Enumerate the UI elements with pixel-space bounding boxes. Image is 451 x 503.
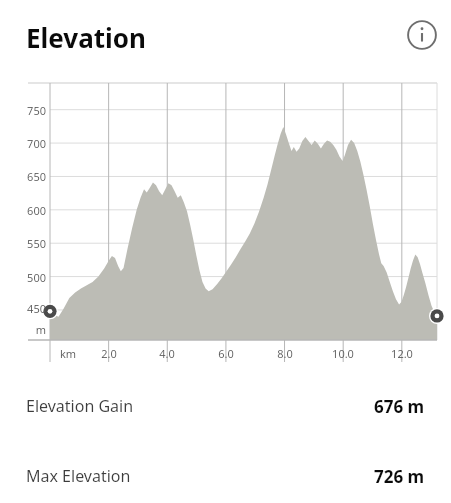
- staticText: 450: [20, 301, 46, 316]
- staticText: Max Elevation: [26, 465, 131, 487]
- staticText: 700: [20, 136, 46, 151]
- staticText: 4.0: [147, 346, 187, 361]
- staticText: 500: [20, 270, 46, 285]
- staticText: 6.0: [206, 346, 246, 361]
- staticText: Elevation: [26, 20, 146, 55]
- staticText: m: [20, 322, 46, 337]
- staticText: 650: [20, 169, 46, 184]
- staticText: 726 m: [374, 465, 425, 488]
- staticText: km: [48, 346, 88, 361]
- staticText: 12.0: [382, 346, 422, 361]
- staticText: Elevation Gain: [26, 395, 134, 417]
- staticText: 750: [20, 103, 46, 118]
- staticText: 550: [20, 236, 46, 251]
- button[interactable]: Elevation Gain: [0, 380, 451, 432]
- button[interactable]: Max Elevation: [0, 450, 451, 502]
- staticText: 2.0: [89, 346, 129, 361]
- staticText: 676 m: [374, 395, 425, 418]
- staticText: 600: [20, 203, 46, 218]
- button[interactable]: Information: [400, 13, 444, 57]
- staticText: 8.0: [265, 346, 305, 361]
- staticText: 10.0: [323, 346, 363, 361]
